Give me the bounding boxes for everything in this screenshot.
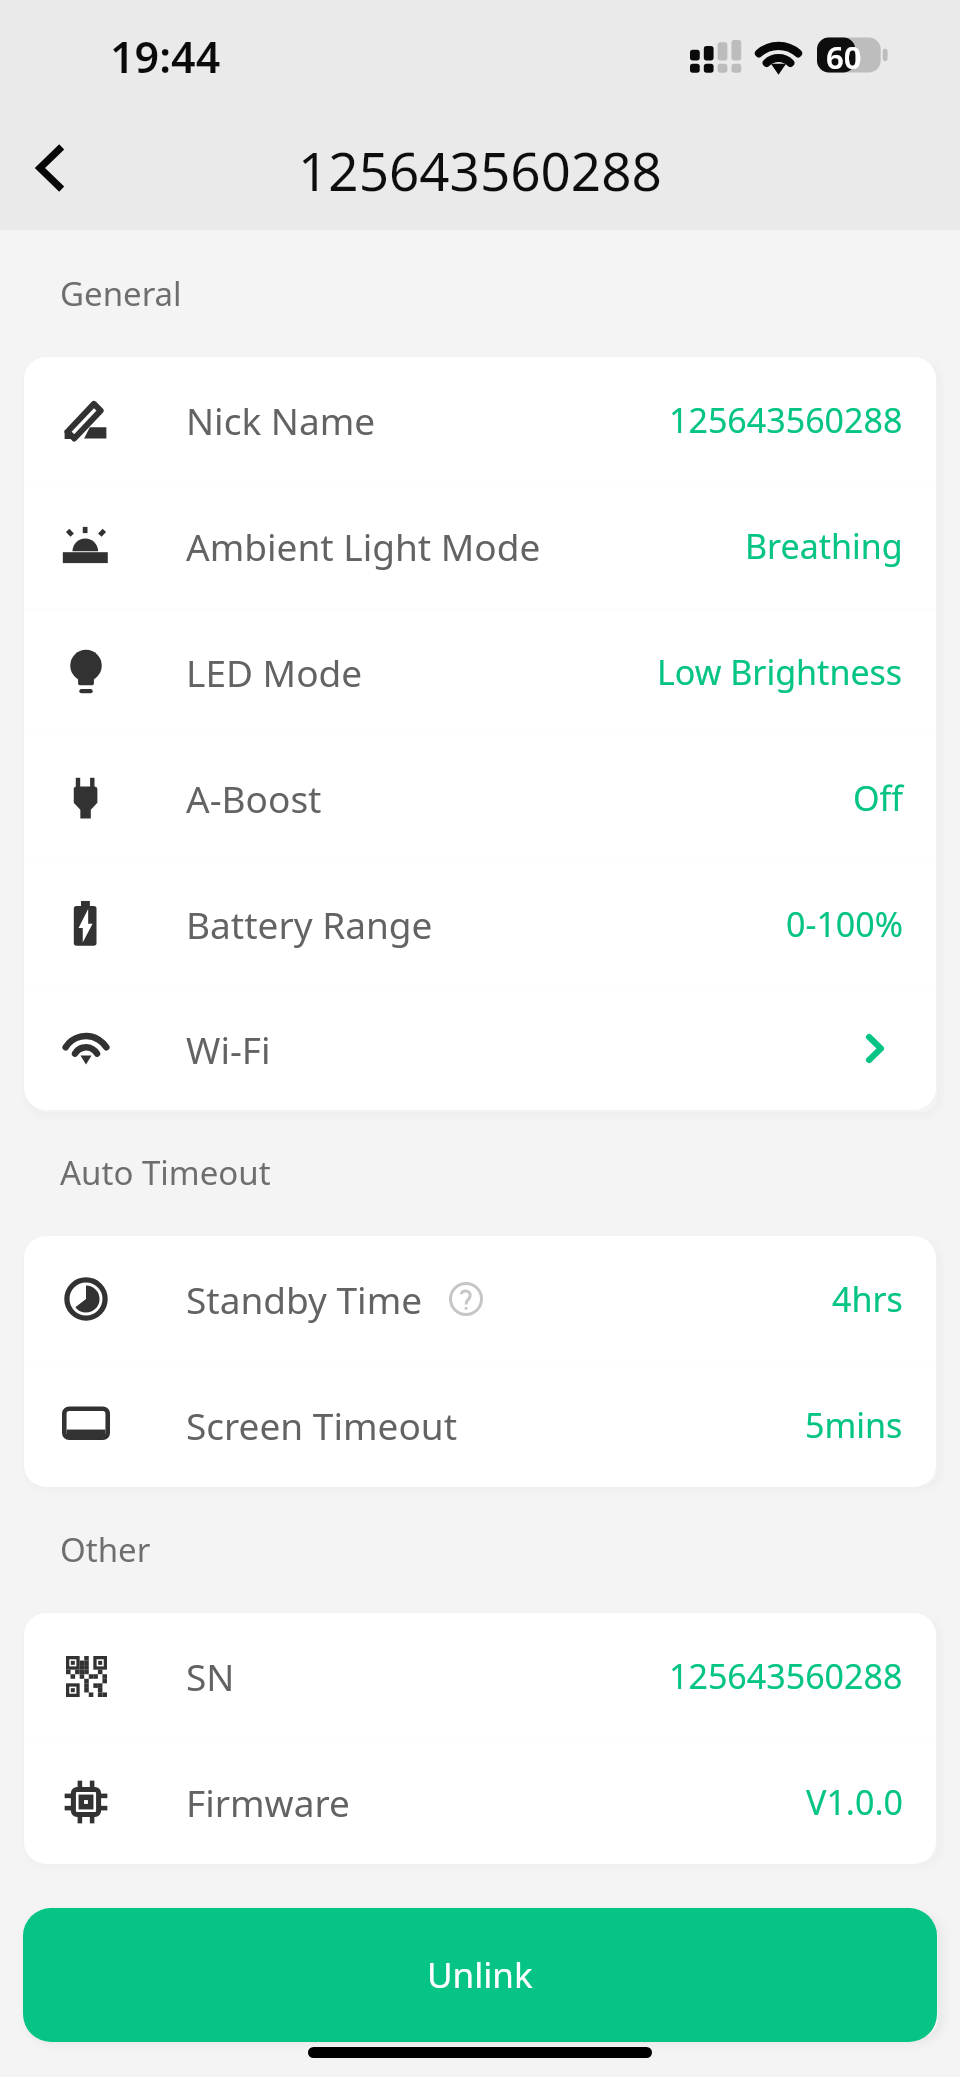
button[interactable]: Wi-Fi (24, 987, 936, 1110)
staticText: Nick Name (186, 395, 376, 445)
staticText: SN (186, 1651, 235, 1701)
staticText: 19:44 (110, 27, 221, 86)
staticText: Breathing (745, 523, 903, 569)
button[interactable]: Unlink (23, 1908, 937, 2042)
staticText: Battery Range (186, 899, 433, 949)
staticText: Auto Timeout (60, 1150, 271, 1195)
staticText: General (60, 271, 182, 316)
staticText: Screen Timeout (186, 1400, 458, 1450)
button[interactable]: A-Boost (24, 735, 936, 860)
staticText: Standby Time (186, 1274, 423, 1324)
staticText: LED Mode (186, 647, 363, 697)
staticText: 125643560288 (669, 1653, 903, 1699)
staticText: Unlink (427, 1951, 533, 1999)
button[interactable]: Firmware (24, 1739, 936, 1864)
staticText: 125643560288 (298, 134, 662, 206)
button[interactable]: Ambient Light Mode (24, 483, 936, 608)
button[interactable]: Nick Name (24, 357, 936, 482)
staticText: Firmware (186, 1777, 350, 1827)
button[interactable]: Back (1, 120, 97, 216)
staticText: 125643560288 (669, 397, 903, 443)
staticText: A-Boost (186, 773, 322, 823)
staticText: 0-100% (786, 901, 903, 947)
staticText: Off (853, 775, 903, 821)
staticText: V1.0.0 (806, 1779, 903, 1825)
staticText: Other (60, 1527, 151, 1572)
button[interactable]: SN (24, 1613, 936, 1738)
staticText: Low Brightness (657, 649, 903, 695)
button[interactable]: Battery Range (24, 861, 936, 986)
button[interactable]: LED Mode (24, 609, 936, 734)
staticText: Ambient Light Mode (186, 521, 541, 571)
staticText: 60 (826, 36, 862, 72)
staticText: 5mins (805, 1402, 903, 1448)
staticText: Wi-Fi (186, 1024, 271, 1074)
button[interactable]: Screen Timeout (24, 1362, 936, 1487)
staticText: 4hrs (832, 1276, 903, 1322)
button[interactable]: Standby Time (24, 1236, 936, 1361)
